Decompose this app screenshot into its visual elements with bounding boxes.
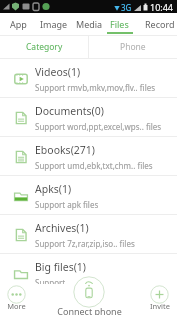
staticText: 3G <box>121 2 132 13</box>
button[interactable]: Archives(1) <box>0 215 177 254</box>
staticText: Support rmvb,mkv,mov,flv.. files <box>35 82 156 93</box>
button[interactable]: Image <box>36 13 72 35</box>
staticText: Apks(1) <box>35 182 72 196</box>
staticText: Archives(1) <box>35 221 89 235</box>
button[interactable]: Phone <box>89 36 177 58</box>
staticText: Category <box>26 41 63 53</box>
staticText: Image <box>40 18 68 30</box>
button[interactable]: Big files(1) <box>0 254 177 293</box>
button[interactable]: Category <box>0 36 88 58</box>
staticText: Support <box>35 277 66 288</box>
button[interactable]: Media <box>72 13 107 35</box>
staticText: Support word,ppt,excel,wps.. files <box>35 121 162 132</box>
staticText: Support apk files <box>35 199 99 210</box>
button[interactable]: Invite <box>143 285 176 314</box>
staticText: Ebooks(271) <box>35 143 95 157</box>
staticText: Phone <box>120 41 146 53</box>
staticText: 10:44 <box>150 1 174 13</box>
button[interactable]: Files <box>107 13 142 35</box>
staticText: Documents(0) <box>35 104 104 118</box>
button[interactable]: Documents(0) <box>0 98 177 137</box>
button[interactable]: Videos(1) <box>0 59 177 98</box>
staticText: Media <box>76 18 103 30</box>
button[interactable]: Ebooks(271) <box>0 137 177 176</box>
button[interactable]: Connect phone <box>54 276 124 315</box>
button[interactable]: More <box>1 285 32 314</box>
button[interactable]: App <box>0 13 36 35</box>
button[interactable]: Apks(1) <box>0 176 177 215</box>
staticText: Support 7z,rar,zip,iso.. files <box>35 238 135 249</box>
staticText: Record <box>145 18 175 30</box>
staticText: Videos(1) <box>35 65 81 79</box>
staticText: Files <box>110 18 129 30</box>
staticText: More <box>7 301 26 311</box>
staticText: Big files(1) <box>35 260 87 274</box>
staticText: App <box>10 18 27 30</box>
staticText: Support umd,ebk,txt,chm.. files <box>35 160 153 171</box>
button[interactable]: Record <box>142 13 177 35</box>
staticText: Invite <box>150 301 170 311</box>
staticText: Connect phone <box>57 305 122 315</box>
